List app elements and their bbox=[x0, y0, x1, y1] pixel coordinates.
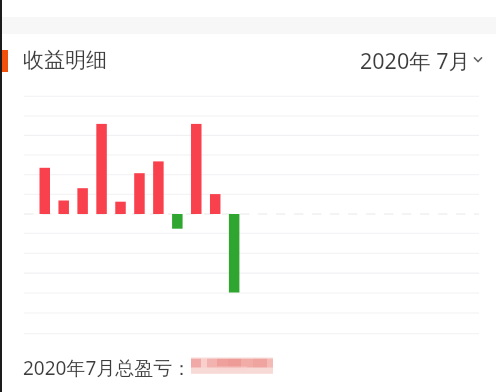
other: Amount hidden bbox=[0, 0, 500, 392]
button[interactable]: 2020年7月总盈亏： bbox=[0, 354, 500, 382]
staticText: 2020年 7月 bbox=[360, 46, 471, 75]
staticText: 收益明细 bbox=[23, 47, 107, 73]
button[interactable]: 2020年 7月 bbox=[360, 46, 484, 75]
button[interactable]: 收益明细 bbox=[23, 47, 107, 73]
button[interactable]: Daily profit bar chart bbox=[0, 88, 500, 342]
other: Choose month bbox=[472, 55, 484, 67]
staticText: 2020年7月总盈亏： bbox=[23, 355, 192, 381]
